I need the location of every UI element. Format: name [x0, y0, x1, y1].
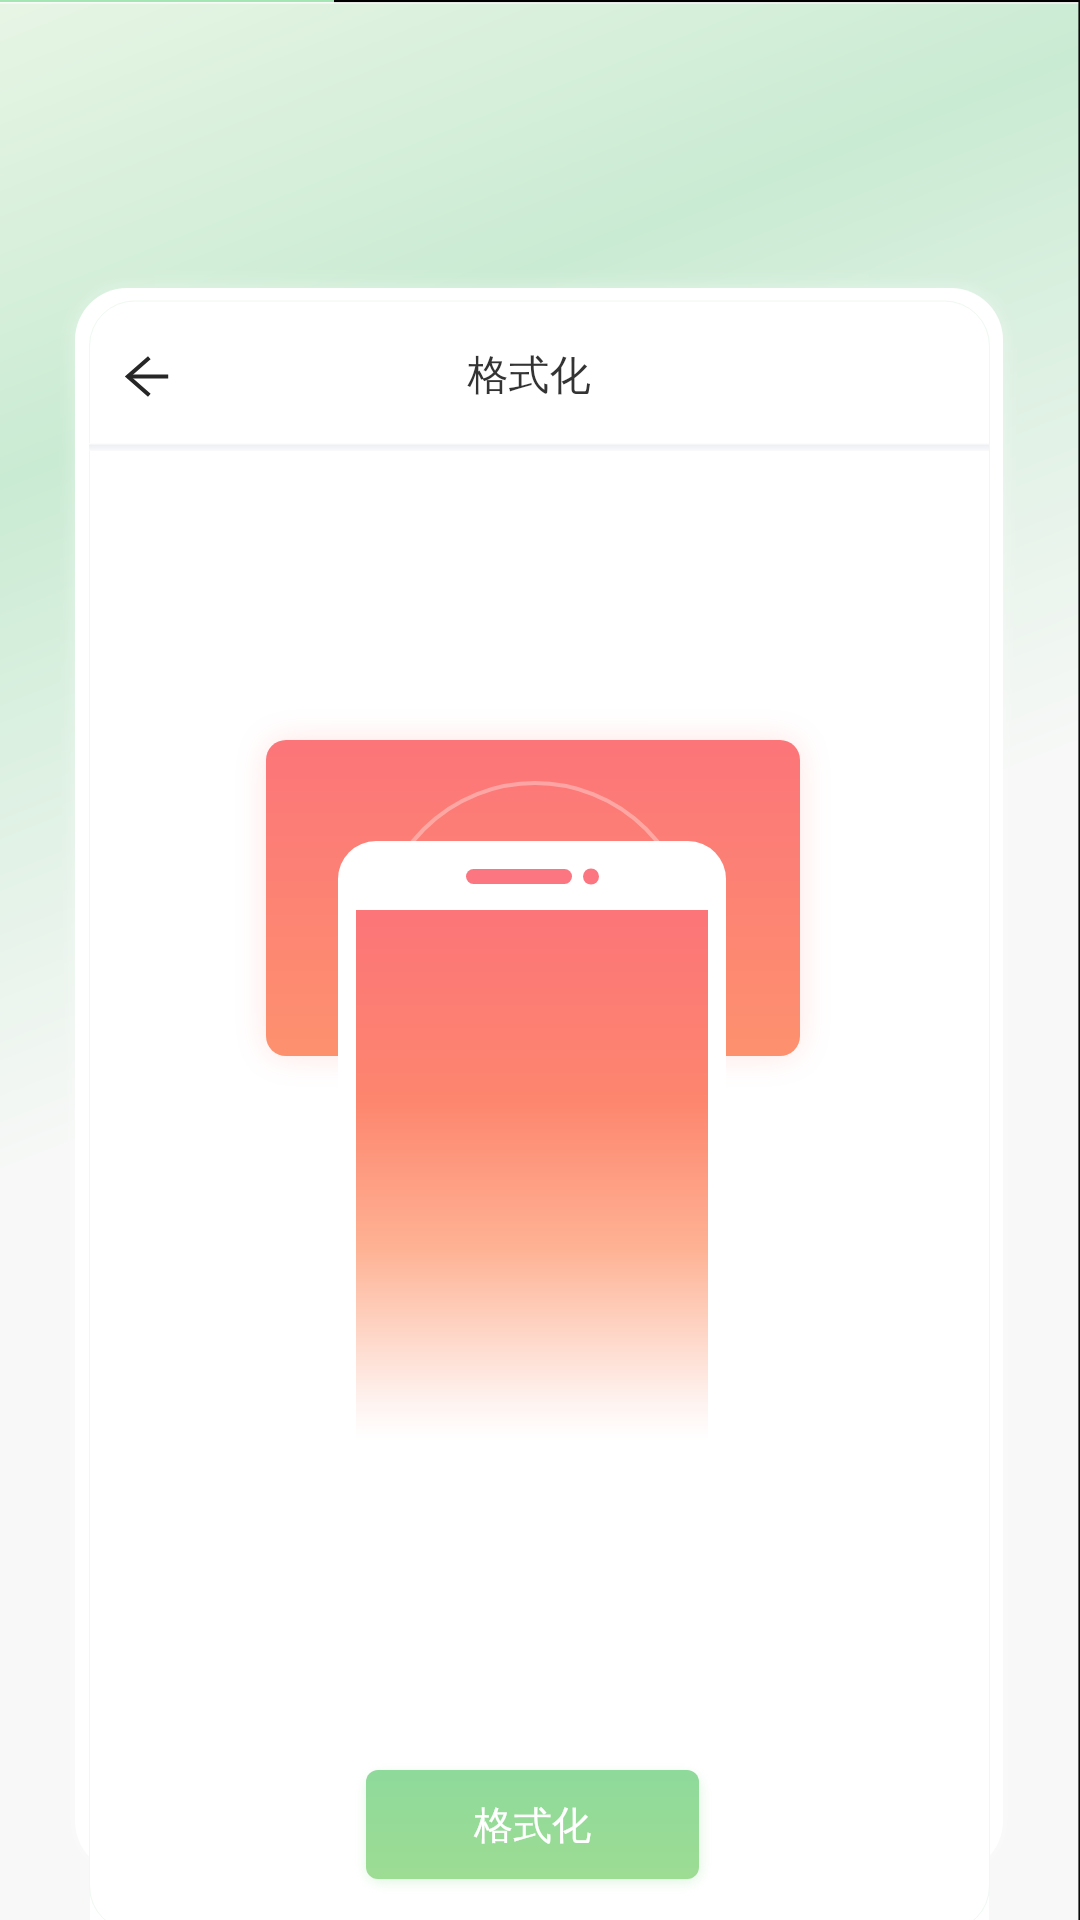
button[interactable]: 格式化 — [366, 1770, 699, 1879]
button[interactable]: Back — [98, 338, 178, 414]
staticText: 格式化 — [0, 350, 1069, 1920]
staticText: 格式化 — [474, 1801, 591, 1850]
